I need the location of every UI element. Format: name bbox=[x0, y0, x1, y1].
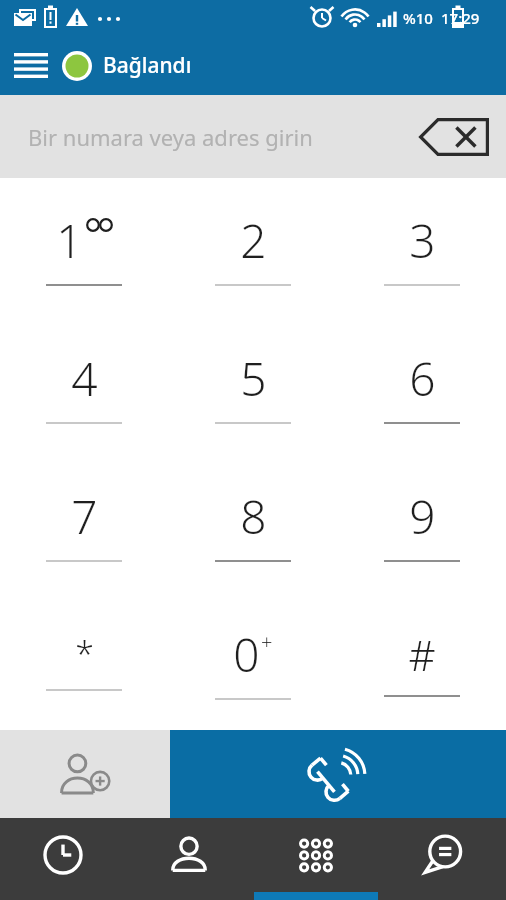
staticText: 7 bbox=[71, 485, 98, 548]
button[interactable]: 5 bbox=[168, 316, 337, 454]
staticText: 6 bbox=[409, 347, 436, 410]
staticText: 3 bbox=[409, 209, 436, 272]
button[interactable]: Recents bbox=[0, 818, 126, 900]
button[interactable]: Add contact bbox=[0, 730, 170, 818]
staticText: Bir numara veya adres girin bbox=[28, 122, 313, 152]
staticText: 4 bbox=[71, 347, 98, 410]
staticText: %10 bbox=[403, 8, 433, 28]
button[interactable]: 1 bbox=[0, 178, 168, 316]
staticText: # bbox=[408, 626, 436, 683]
button[interactable]: 0 bbox=[168, 592, 337, 730]
staticText: 2 bbox=[240, 209, 267, 272]
staticText: 0 bbox=[233, 623, 260, 686]
button[interactable]: Messages bbox=[379, 818, 506, 900]
button[interactable]: * bbox=[0, 592, 168, 730]
button[interactable]: Call bbox=[170, 730, 506, 818]
button[interactable]: 9 bbox=[337, 454, 506, 592]
staticText: 5 bbox=[240, 347, 267, 410]
staticText: + bbox=[261, 628, 273, 655]
staticText: 17:29 bbox=[441, 8, 480, 28]
staticText: Bağlandı bbox=[103, 51, 192, 80]
button[interactable]: 3 bbox=[337, 178, 506, 316]
button[interactable]: Keypad bbox=[252, 818, 379, 900]
staticText: 1 bbox=[56, 209, 83, 272]
button[interactable]: 4 bbox=[0, 316, 168, 454]
button[interactable]: Backspace bbox=[414, 109, 494, 165]
button[interactable]: 6 bbox=[337, 316, 506, 454]
button[interactable]: # bbox=[337, 592, 506, 730]
button[interactable]: 7 bbox=[0, 454, 168, 592]
button[interactable]: Bir numara veya adres girin bbox=[0, 95, 506, 178]
button[interactable]: 8 bbox=[168, 454, 337, 592]
button[interactable]: 2 bbox=[168, 178, 337, 316]
button[interactable]: Contacts bbox=[126, 818, 252, 900]
staticText: 8 bbox=[240, 485, 267, 548]
staticText: 9 bbox=[409, 485, 436, 548]
staticText: * bbox=[75, 631, 94, 677]
button[interactable]: Menu bbox=[0, 36, 62, 95]
